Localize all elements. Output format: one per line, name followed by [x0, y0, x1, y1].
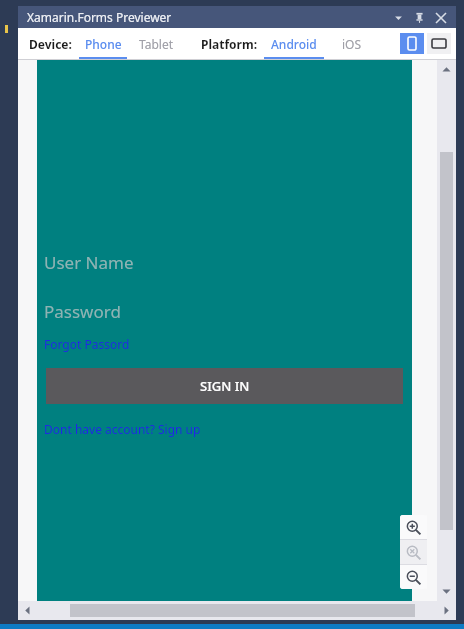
staticText: Password [44, 300, 121, 323]
button[interactable]: Reset zoom [400, 540, 427, 564]
button[interactable]: Pin window [411, 9, 428, 26]
staticText: Dont have account? Sign up [44, 421, 201, 437]
button[interactable]: Dont have account? Sign up [44, 418, 201, 440]
button[interactable]: Landscape [427, 33, 451, 54]
staticText: Phone [85, 36, 122, 52]
button[interactable]: Phone [78, 28, 128, 59]
button[interactable]: Android [263, 28, 325, 59]
button[interactable]: Zoom in [400, 515, 427, 539]
button[interactable]: SIGN IN [46, 368, 403, 404]
button[interactable]: Forgot Passord [44, 333, 130, 355]
staticText: Xamarin.Forms Previewer [27, 9, 172, 25]
button[interactable]: User Name [44, 243, 400, 281]
button[interactable]: Scroll down [437, 582, 456, 601]
staticText: SIGN IN [200, 377, 250, 395]
staticText: Android [271, 36, 317, 52]
button[interactable]: Scroll up [437, 60, 456, 79]
staticText: User Name [44, 251, 134, 274]
button[interactable]: Scroll right [437, 601, 456, 620]
staticText: Forgot Passord [44, 336, 130, 352]
button[interactable]: Window options [390, 9, 407, 26]
button[interactable]: Password [44, 292, 400, 330]
staticText: Device: [29, 36, 72, 52]
staticText: Platform: [201, 36, 258, 52]
button[interactable]: Zoom out [400, 565, 427, 589]
button[interactable]: Tablet [132, 28, 180, 59]
staticText: iOS [342, 36, 362, 52]
staticText: Tablet [139, 36, 174, 52]
button[interactable]: Scroll left [18, 601, 37, 620]
button[interactable]: Portrait [400, 33, 424, 54]
button[interactable]: iOS [335, 28, 369, 59]
button[interactable]: Close [432, 9, 449, 26]
